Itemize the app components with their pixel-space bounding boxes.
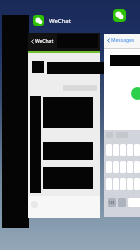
button[interactable] <box>134 144 140 156</box>
button[interactable] <box>120 161 126 173</box>
button[interactable] <box>106 144 112 156</box>
button[interactable] <box>106 178 112 190</box>
staticText: WeChat <box>35 38 54 45</box>
button[interactable]: WeChat <box>113 9 126 22</box>
staticText: Messages <box>111 37 135 44</box>
button[interactable] <box>113 178 119 190</box>
button[interactable] <box>134 161 140 173</box>
button[interactable] <box>106 161 112 173</box>
staticText: WeChat <box>49 17 71 25</box>
button[interactable] <box>127 144 133 156</box>
button[interactable] <box>113 161 119 173</box>
button[interactable] <box>120 178 126 190</box>
staticText: 123 <box>109 201 115 205</box>
button[interactable]: 123 <box>108 198 116 207</box>
button[interactable] <box>120 144 126 156</box>
button[interactable] <box>127 178 133 190</box>
button[interactable]: WeChat <box>33 15 71 26</box>
button[interactable] <box>134 178 140 190</box>
button[interactable] <box>113 144 119 156</box>
button[interactable]: Emoji <box>118 198 126 207</box>
button[interactable] <box>127 161 133 173</box>
button[interactable] <box>128 198 140 207</box>
